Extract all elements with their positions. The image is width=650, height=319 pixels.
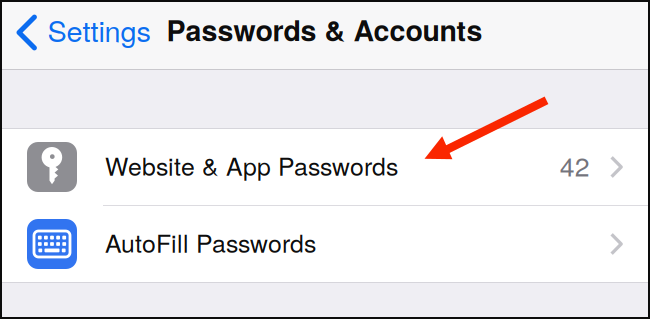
button[interactable]: Website & App Passwords [0,129,650,205]
staticText: Website & App Passwords [105,147,398,183]
staticText: Settings [47,9,150,50]
button[interactable]: AutoFill Passwords [0,206,650,282]
staticText: 42 [560,146,590,184]
staticText: Passwords & Accounts [166,9,482,50]
button[interactable]: Settings [0,0,156,69]
staticText: AutoFill Passwords [105,224,316,260]
